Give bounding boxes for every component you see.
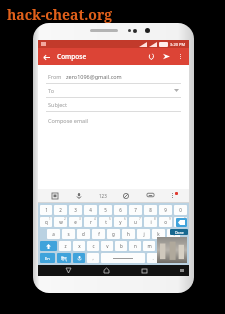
button[interactable]: 9 [159, 205, 172, 215]
button[interactable]: To [38, 84, 189, 98]
staticText: 1 [45, 207, 48, 213]
button[interactable]: q [40, 217, 52, 227]
button[interactable]: More [167, 189, 179, 202]
button[interactable]: r [84, 217, 97, 227]
button[interactable]: v [101, 241, 113, 251]
button[interactable]: Voice input [72, 189, 86, 202]
button[interactable]: 4 [84, 205, 97, 215]
button[interactable]: Stickers [48, 189, 62, 202]
button[interactable]: w [54, 217, 67, 227]
button[interactable]: Subject [38, 98, 189, 112]
button[interactable]: 0 [174, 205, 187, 215]
button[interactable]: n [129, 241, 141, 251]
button[interactable]: f [92, 229, 105, 239]
button[interactable]: , [87, 253, 99, 263]
button[interactable]: Compose email [38, 115, 189, 124]
button[interactable]: More options [174, 50, 187, 63]
staticText: d [82, 231, 85, 237]
button[interactable]: Image preview [157, 237, 187, 263]
staticText: 9 [169, 217, 171, 221]
staticText: f [98, 231, 100, 237]
button[interactable]: 6 [114, 205, 127, 215]
staticText: En [45, 256, 50, 261]
staticText: a [52, 231, 55, 237]
staticText: , [92, 255, 94, 261]
staticText: j [143, 231, 145, 237]
button[interactable]: h [122, 229, 135, 239]
button[interactable]: 8 [144, 205, 157, 215]
staticText: 1 [49, 217, 51, 221]
button[interactable]: l [167, 229, 180, 239]
staticText: 4 [94, 217, 96, 221]
button[interactable]: d [77, 229, 90, 239]
button[interactable]: i [144, 217, 157, 227]
button[interactable]: j [137, 229, 150, 239]
button[interactable]: 1 [40, 205, 52, 215]
button[interactable]: u [129, 217, 142, 227]
button[interactable]: ↵ [175, 253, 187, 263]
button[interactable]: Voice [73, 253, 85, 263]
staticText: 2 [64, 217, 66, 221]
button[interactable]: Home [100, 265, 113, 276]
staticText: . [152, 255, 154, 261]
button[interactable]: 5 [99, 205, 112, 215]
button[interactable]: k [152, 229, 165, 239]
button[interactable]: y [114, 217, 127, 227]
button[interactable]: Switch language [40, 253, 55, 263]
staticText: x [78, 243, 81, 249]
button[interactable]: ! [157, 241, 169, 251]
staticText: q [45, 219, 48, 225]
staticText: l [173, 231, 175, 237]
button[interactable]: Shift [40, 241, 57, 251]
button[interactable]: . [147, 253, 159, 263]
staticText: ↵ [179, 256, 183, 261]
button[interactable]: e [69, 217, 82, 227]
button[interactable]: s [62, 229, 75, 239]
button[interactable]: Back [38, 49, 54, 65]
button[interactable]: Emoji [119, 189, 133, 202]
staticText: y [119, 219, 122, 225]
button[interactable]: o [159, 217, 172, 227]
button[interactable]: g [107, 229, 120, 239]
button[interactable]: 7 [129, 205, 142, 215]
button[interactable]: Attach file [144, 49, 159, 64]
button[interactable]: Backspace [176, 218, 187, 227]
button[interactable]: Hindi [57, 253, 71, 263]
staticText: ! [162, 243, 164, 249]
button[interactable]: 3 [69, 205, 82, 215]
button[interactable]: Compose [57, 52, 87, 61]
staticText: 6 [124, 217, 126, 221]
button[interactable]: Recents [138, 265, 151, 276]
button[interactable]: 2 [54, 205, 67, 215]
button[interactable] [101, 253, 145, 263]
button[interactable]: m [143, 241, 155, 251]
staticText: 3 [79, 217, 81, 221]
button[interactable]: p [174, 217, 187, 227]
button[interactable]: Hide keyboard [176, 265, 187, 276]
staticText: 7 [134, 207, 137, 213]
button[interactable]: x [73, 241, 85, 251]
button[interactable]: c [87, 241, 99, 251]
staticText: t [105, 219, 107, 225]
button[interactable]: 123 [96, 189, 110, 202]
button[interactable]: t [99, 217, 112, 227]
staticText: m [147, 243, 152, 249]
button[interactable]: From [38, 70, 189, 84]
button[interactable]: Send [159, 49, 174, 64]
button[interactable]: Keyboard settings [143, 189, 157, 202]
button[interactable]: Enter [170, 229, 188, 235]
staticText: To [48, 87, 55, 94]
staticText: ← [165, 256, 169, 261]
button[interactable]: ← [161, 253, 173, 263]
button[interactable]: z [59, 241, 71, 251]
staticText: Subject [48, 101, 67, 108]
staticText: 0 [179, 207, 182, 213]
staticText: b [120, 243, 123, 249]
button[interactable]: b [115, 241, 127, 251]
button[interactable]: Back [62, 265, 75, 276]
staticText: n [134, 243, 137, 249]
staticText: हिन् [61, 256, 67, 261]
staticText: 7 [139, 217, 141, 221]
staticText: g [112, 231, 115, 237]
button[interactable]: a [47, 229, 60, 239]
